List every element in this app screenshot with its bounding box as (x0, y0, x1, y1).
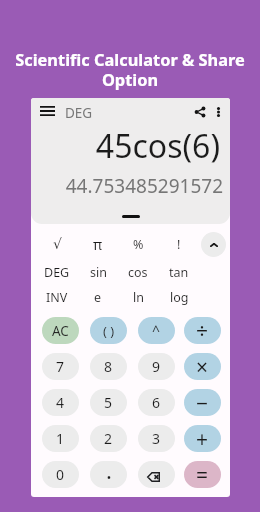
button[interactable]: ÷ (184, 317, 221, 344)
button[interactable]: 6 (138, 389, 175, 416)
staticText: log (170, 289, 189, 306)
button[interactable]: = (184, 461, 221, 488)
staticText: e (94, 289, 102, 306)
button[interactable]: 3 (138, 425, 175, 452)
button[interactable]: 9 (138, 353, 175, 380)
staticText: ÷ (196, 317, 209, 344)
staticText: 8 (104, 357, 113, 376)
staticText: π (93, 235, 103, 254)
staticText: 44.753485291572 (31, 173, 223, 199)
staticText: 5 (104, 393, 113, 412)
button[interactable]: 1 (42, 425, 79, 452)
staticText: 45cos(6) (31, 124, 220, 168)
button[interactable]: ln (119, 285, 157, 309)
staticText: tan (169, 264, 189, 281)
button[interactable]: log (160, 285, 198, 309)
staticText: ln (133, 289, 144, 306)
button[interactable]: DEG (38, 260, 76, 284)
staticText: = (196, 461, 209, 488)
staticText: 1 (56, 429, 65, 448)
staticText: ( ) (103, 322, 115, 340)
staticText: ! (177, 236, 181, 253)
staticText: · (106, 461, 112, 488)
staticText: 6 (152, 393, 161, 412)
staticText: DEG (44, 264, 70, 281)
staticText: 3 (152, 429, 161, 448)
staticText: ^ (152, 321, 161, 340)
staticText: AC (52, 322, 69, 340)
button[interactable]: − (184, 389, 221, 416)
button[interactable]: Share (188, 100, 212, 124)
button[interactable]: tan (160, 260, 198, 284)
staticText: 9 (152, 357, 161, 376)
button[interactable]: × (184, 353, 221, 380)
staticText: sin (90, 264, 107, 281)
staticText: Scientific Calculator & Share Option (14, 48, 246, 91)
staticText: cos (128, 264, 148, 281)
button[interactable]: AC (42, 317, 79, 344)
button[interactable]: √ (38, 232, 76, 256)
staticText: DEG (65, 104, 93, 122)
button[interactable]: Menu (35, 99, 59, 123)
button[interactable]: Backspace (138, 461, 175, 488)
button[interactable]: + (184, 425, 221, 452)
button[interactable]: 8 (90, 353, 127, 380)
button[interactable]: ( ) (90, 317, 127, 344)
staticText: √ (53, 236, 62, 252)
staticText: 4 (56, 393, 65, 412)
staticText: × (196, 353, 209, 380)
staticText: 0 (56, 465, 65, 484)
button[interactable]: ^ (138, 317, 175, 344)
staticText: − (196, 389, 209, 416)
button[interactable]: π (79, 232, 117, 256)
button[interactable]: 0 (42, 461, 79, 488)
button[interactable]: Collapse scientific keypad (201, 232, 226, 257)
button[interactable]: e (79, 285, 117, 309)
button[interactable]: 5 (90, 389, 127, 416)
button[interactable]: · (90, 461, 127, 488)
button[interactable]: 2 (90, 425, 127, 452)
button[interactable]: INV (38, 285, 76, 309)
button[interactable]: ! (160, 232, 198, 256)
staticText: 7 (56, 357, 65, 376)
button[interactable]: 4 (42, 389, 79, 416)
button[interactable]: sin (79, 260, 117, 284)
staticText: INV (46, 289, 68, 306)
staticText: + (196, 425, 209, 452)
button[interactable]: More options (206, 100, 230, 124)
staticText: % (133, 236, 144, 253)
staticText: 2 (104, 429, 113, 448)
button[interactable]: cos (119, 260, 157, 284)
button[interactable]: 7 (42, 353, 79, 380)
button[interactable]: % (119, 232, 157, 256)
